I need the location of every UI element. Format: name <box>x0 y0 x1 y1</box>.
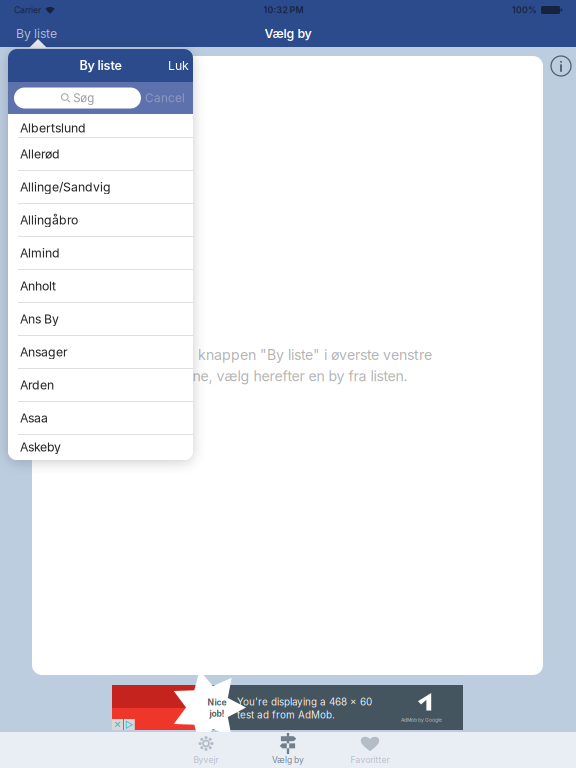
button[interactable]: Allinge/Sandvig <box>8 171 193 204</box>
staticText: Nice <box>207 697 226 707</box>
staticText: Almind <box>20 246 60 260</box>
staticText: Vælg by <box>272 755 304 765</box>
staticText: Byvejr <box>193 755 218 765</box>
staticText: ✕ <box>113 719 121 730</box>
button[interactable]: Favoritter <box>329 732 411 768</box>
staticText: Anholt <box>20 279 56 293</box>
staticText: Luk <box>168 58 189 73</box>
staticText: 100% <box>512 5 537 15</box>
button[interactable]: Byvejr <box>165 732 247 768</box>
staticText: You're displaying a 468 x 60 <box>237 696 372 708</box>
staticText: Arden <box>20 378 54 392</box>
staticText: job! <box>209 708 224 719</box>
staticText: Allinge/Sandvig <box>20 180 111 194</box>
staticText: ▷ <box>125 719 134 730</box>
button[interactable]: Anholt <box>8 270 193 303</box>
button[interactable]: Allerød <box>8 138 193 171</box>
staticText: Favoritter <box>350 755 389 765</box>
staticText: Carrier <box>14 5 41 15</box>
button[interactable]: Asaa <box>8 402 193 435</box>
button[interactable]: By liste <box>0 20 57 47</box>
staticText: Tryk på knappen "By liste" i øverste ven… <box>143 346 432 363</box>
staticText: Vælg by <box>264 26 311 41</box>
staticText: Askeby <box>20 440 61 454</box>
button[interactable]: Vælg by <box>247 732 329 768</box>
staticText: Ans By <box>20 312 59 326</box>
button[interactable]: Arden <box>8 369 193 402</box>
button[interactable]: Allingåbro <box>8 204 193 237</box>
button[interactable]: Info <box>546 51 576 81</box>
button[interactable]: Nice <box>112 685 463 730</box>
staticText: Søg <box>73 91 94 105</box>
staticText: By liste <box>16 26 57 41</box>
button[interactable]: Askeby <box>8 435 193 460</box>
staticText: Allingåbro <box>20 213 78 227</box>
staticText: 10:32 PM <box>263 5 303 15</box>
button[interactable]: Luk <box>168 49 193 82</box>
button[interactable]: Albertslund <box>8 114 193 138</box>
staticText: Asaa <box>20 411 48 425</box>
staticText: test ad from AdMob. <box>237 709 335 721</box>
staticText: AdMob by Google <box>401 717 442 723</box>
staticText: Cancel <box>145 91 185 105</box>
button[interactable]: Almind <box>8 237 193 270</box>
staticText: Albertslund <box>20 121 86 135</box>
staticText: Allerød <box>20 147 60 161</box>
button[interactable]: Ans By <box>8 303 193 336</box>
button[interactable]: Ansager <box>8 336 193 369</box>
staticText: Ansager <box>20 345 68 359</box>
staticText: By liste <box>79 58 121 73</box>
staticText: hjørne, vælg herefter en by fra listen. <box>167 367 407 385</box>
